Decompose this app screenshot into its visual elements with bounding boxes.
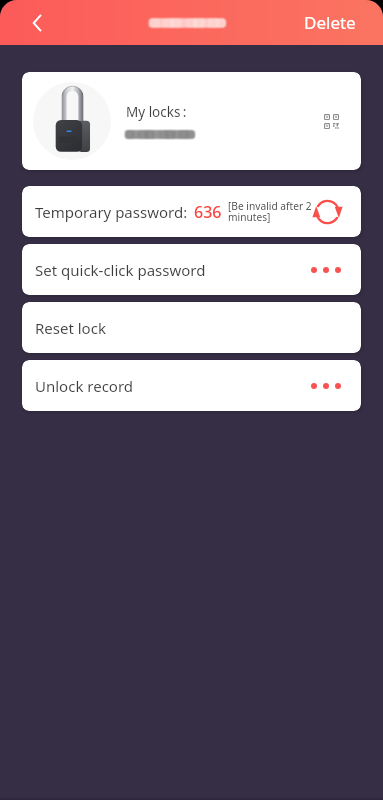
staticText: My locks : bbox=[126, 103, 187, 121]
button[interactable]: Show QR code bbox=[314, 104, 348, 138]
button[interactable]: Delete bbox=[290, 5, 383, 40]
button[interactable]: Set quick-click password bbox=[22, 244, 361, 295]
button[interactable]: Back bbox=[22, 8, 52, 38]
button[interactable]: Unlock record bbox=[22, 360, 361, 411]
staticText: Delete bbox=[304, 11, 356, 34]
staticText: Unlock record bbox=[35, 376, 134, 396]
button[interactable]: Refresh temporary password bbox=[313, 195, 342, 229]
staticText: Set quick-click password bbox=[35, 260, 206, 280]
button[interactable]: Temporary password: bbox=[22, 186, 361, 237]
button[interactable]: My locks : bbox=[22, 72, 361, 170]
staticText: Temporary password: bbox=[35, 202, 188, 222]
staticText: Reset lock bbox=[35, 318, 106, 338]
button[interactable]: Reset lock bbox=[22, 302, 361, 353]
staticText: [Be invalid after 2 minutes] bbox=[228, 199, 313, 224]
staticText: 636 bbox=[194, 201, 222, 223]
